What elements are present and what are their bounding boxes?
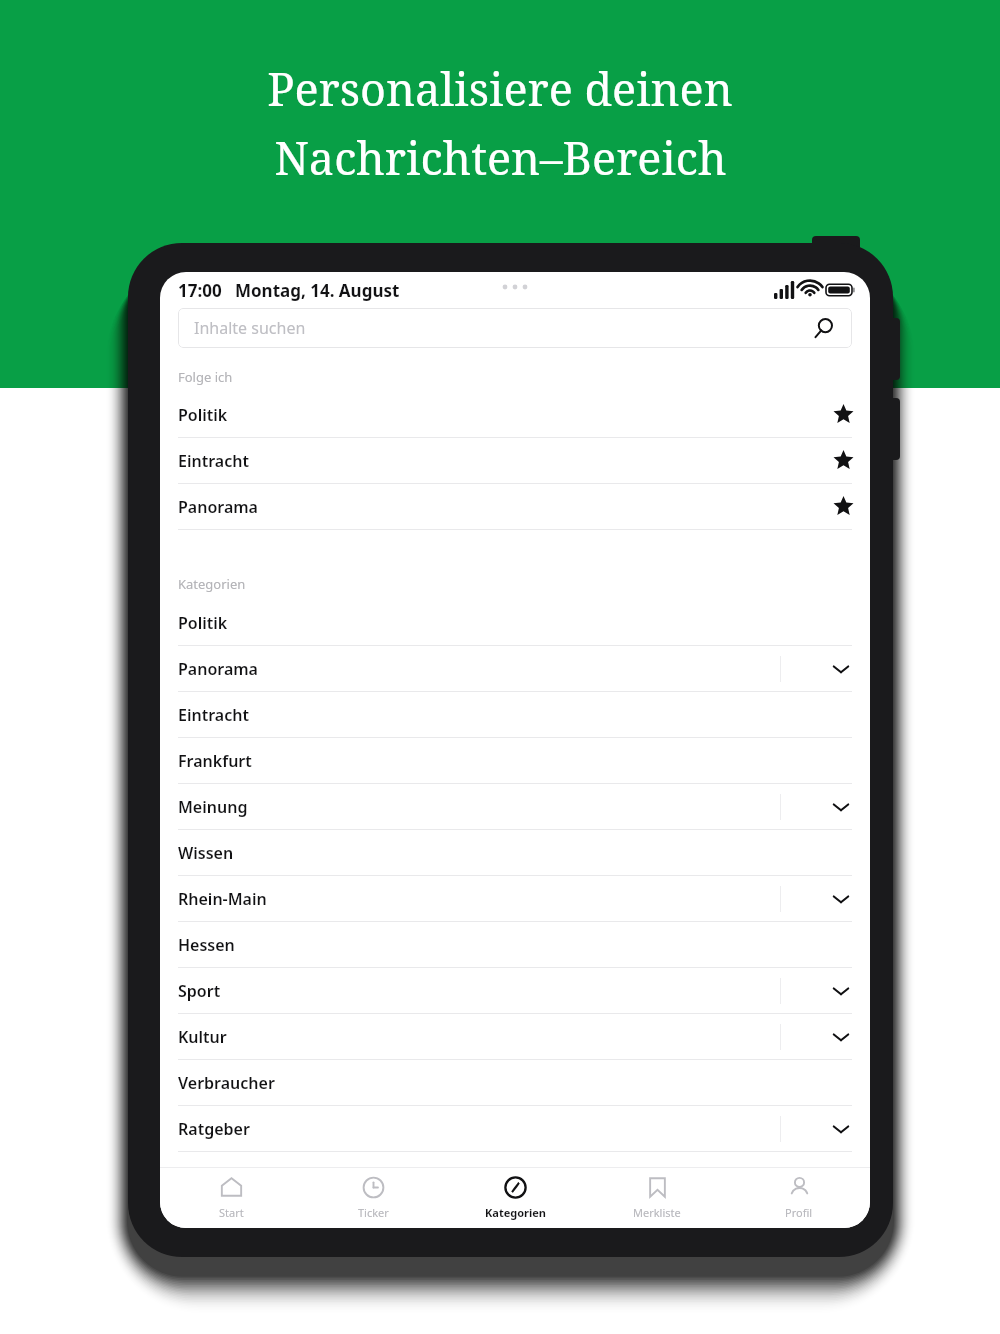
staticText: Wissen — [178, 842, 234, 864]
staticText: Panorama — [178, 658, 258, 680]
staticText: Produktempfehlung — [178, 1164, 336, 1186]
staticText: Folge ich — [178, 368, 233, 386]
staticText: Panorama — [178, 496, 258, 518]
button[interactable]: Rhein-Main — [160, 876, 870, 922]
button[interactable]: Eintracht — [160, 692, 870, 738]
staticText: Ratgeber — [178, 1118, 250, 1140]
other: Aufklappen Panorama — [832, 660, 850, 678]
button[interactable]: Panorama — [160, 646, 870, 692]
button[interactable]: Verbraucher — [160, 1060, 870, 1106]
button[interactable]: Panorama — [160, 484, 870, 530]
staticText: Start — [219, 1205, 244, 1220]
button[interactable]: Politik — [160, 392, 870, 438]
button[interactable]: Sport — [160, 968, 870, 1014]
staticText: Rhein-Main — [178, 888, 267, 910]
button[interactable]: Meinung — [160, 784, 870, 830]
staticText: Hessen — [178, 934, 235, 956]
button[interactable]: Hessen — [160, 922, 870, 968]
staticText: Kategorien — [178, 575, 246, 593]
other: Aufklappen Sport — [832, 982, 850, 1000]
other: Entfolgen Politik — [833, 404, 854, 425]
staticText: Profil — [785, 1205, 813, 1220]
button[interactable]: Profil — [728, 1168, 870, 1228]
staticText: Eintracht — [178, 704, 249, 726]
staticText: Inhalte suchen — [194, 317, 306, 339]
staticText: 17:00 Montag, 14. August — [178, 279, 400, 302]
button[interactable]: Merkliste — [586, 1168, 728, 1228]
staticText: Sport — [178, 980, 221, 1002]
staticText: Eintracht — [178, 450, 249, 472]
button[interactable]: Produktempfehlung — [160, 1152, 870, 1198]
other: Aufklappen Ratgeber — [832, 1120, 850, 1138]
staticText: Frankfurt — [178, 750, 252, 772]
button[interactable]: Kategorien — [444, 1168, 586, 1228]
other: Entfolgen Panorama — [833, 496, 854, 517]
button[interactable]: Start — [160, 1168, 302, 1228]
other: Entfolgen Eintracht — [833, 450, 854, 471]
staticText: Kategorien — [485, 1205, 546, 1220]
staticText: Kultur — [178, 1026, 227, 1048]
button[interactable]: Eintracht — [160, 438, 870, 484]
staticText: Personalisiere deinen — [267, 58, 733, 119]
button[interactable]: Ticker — [302, 1168, 444, 1228]
staticText: Merkliste — [633, 1205, 681, 1220]
staticText: Politik — [178, 612, 228, 634]
staticText: Ticker — [358, 1205, 389, 1220]
button[interactable]: Inhalte suchen — [178, 308, 852, 348]
other: Aufklappen Kultur — [832, 1028, 850, 1046]
staticText: Politik — [178, 404, 228, 426]
button[interactable]: Politik — [160, 600, 870, 646]
button[interactable]: Wissen — [160, 830, 870, 876]
other: Aufklappen Rhein-Main — [832, 890, 850, 908]
staticText: Nachrichten–Bereich — [274, 127, 727, 188]
staticText: Verbraucher — [178, 1072, 275, 1094]
button[interactable]: Kultur — [160, 1014, 870, 1060]
button[interactable]: Ratgeber — [160, 1106, 870, 1152]
other: Aufklappen Meinung — [832, 798, 850, 816]
staticText: Meinung — [178, 796, 248, 818]
button[interactable]: Frankfurt — [160, 738, 870, 784]
